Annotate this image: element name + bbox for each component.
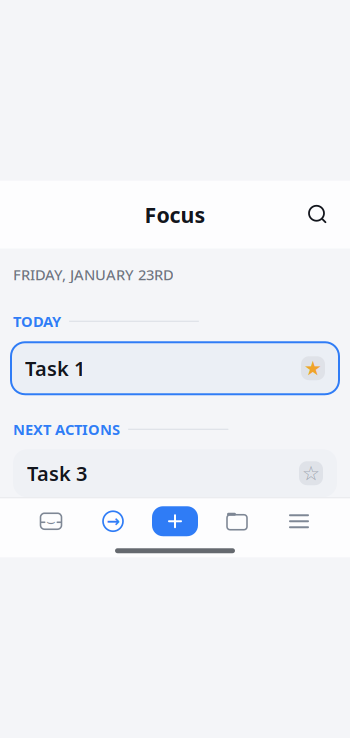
staticText: FRIDAY, JANUARY 23RD	[13, 265, 174, 284]
button[interactable]: Menu	[268, 499, 330, 543]
button[interactable]: Next	[82, 499, 144, 543]
staticText: ⌣	[46, 515, 56, 529]
button[interactable]: Search	[298, 195, 338, 235]
staticText: →	[106, 512, 119, 530]
staticText: ★	[304, 357, 322, 380]
button[interactable]: Task 1	[11, 342, 339, 394]
staticText: Task 3	[27, 460, 87, 487]
button[interactable]: Add task	[144, 499, 206, 543]
staticText: TODAY	[13, 311, 61, 331]
button[interactable]: Inbox	[20, 499, 82, 543]
staticText: NEXT ACTIONS	[13, 419, 120, 439]
staticText: Focus	[144, 201, 205, 229]
button[interactable]: Task 3	[13, 449, 337, 497]
button[interactable]: Projects	[206, 499, 268, 543]
staticText: ☆	[302, 462, 320, 485]
staticText: Task 1	[25, 355, 85, 382]
